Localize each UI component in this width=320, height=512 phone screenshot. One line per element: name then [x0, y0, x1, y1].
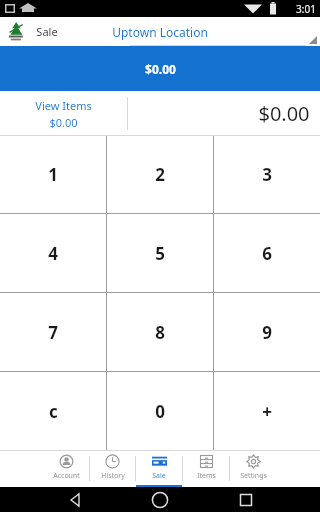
button[interactable]: c [0, 372, 106, 450]
button[interactable]: + [214, 372, 320, 450]
staticText: 4 [48, 242, 58, 265]
staticText: 2 [155, 163, 165, 186]
button[interactable]: Sale [136, 450, 182, 487]
staticText: 5 [155, 242, 165, 265]
staticText: 9 [262, 321, 272, 344]
button[interactable]: 2 [107, 136, 213, 213]
button[interactable]: 7 [0, 293, 106, 371]
button[interactable]: History [90, 450, 135, 487]
staticText: 6 [262, 242, 272, 265]
staticText: 3:01 [296, 2, 316, 16]
staticText: View Items [35, 98, 92, 113]
button[interactable]: 4 [0, 214, 106, 292]
staticText: Account [53, 471, 80, 481]
staticText: + [262, 400, 272, 423]
button[interactable]: 8 [107, 293, 213, 371]
button[interactable]: Back [64, 489, 86, 511]
button[interactable]: 9 [214, 293, 320, 371]
staticText: 0 [155, 400, 165, 423]
button[interactable]: 6 [214, 214, 320, 292]
staticText: Items [197, 471, 216, 481]
button[interactable]: 0 [107, 372, 213, 450]
staticText: $0.00 [145, 61, 176, 77]
staticText: Uptown Location [112, 24, 208, 40]
staticText: c [49, 400, 58, 423]
staticText: Sale [152, 471, 166, 481]
button[interactable]: Select location [309, 36, 317, 44]
staticText: 8 [155, 321, 165, 344]
button[interactable]: Account [44, 450, 89, 487]
staticText: 3 [262, 163, 272, 186]
button[interactable]: 5 [107, 214, 213, 292]
button[interactable]: $0.00 [0, 46, 320, 91]
staticText: Settings [240, 471, 267, 481]
staticText: Sale [36, 24, 58, 39]
staticText: $0.00 [258, 100, 310, 127]
button[interactable]: Recent apps [235, 489, 257, 511]
button[interactable]: 3 [214, 136, 320, 213]
button[interactable]: Items [183, 450, 229, 487]
button[interactable]: Home [149, 489, 171, 511]
staticText: $0.00 [49, 115, 78, 130]
staticText: History [101, 471, 125, 481]
button[interactable]: 1 [0, 136, 106, 213]
staticText: 1 [48, 163, 58, 186]
button[interactable]: Settings [230, 450, 276, 487]
staticText: 7 [48, 321, 58, 344]
button[interactable]: View Items [0, 91, 127, 136]
